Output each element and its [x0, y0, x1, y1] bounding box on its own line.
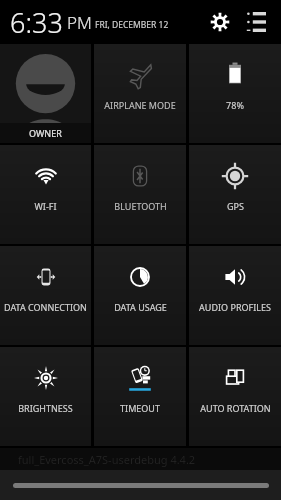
button[interactable]: WI-FI [0, 145, 91, 244]
button[interactable]: Settings [205, 7, 235, 37]
staticText: OWNER [29, 127, 62, 139]
staticText: PM [67, 11, 92, 34]
button[interactable]: DATA USAGE [94, 246, 186, 345]
staticText: 78% [226, 99, 244, 111]
button[interactable]: DATA CONNECTION [0, 246, 91, 345]
staticText: BRIGHTNESS [18, 402, 73, 414]
staticText: GPS [227, 200, 244, 212]
staticText: DATA USAGE [114, 301, 167, 313]
staticText: WI-FI [34, 200, 57, 212]
button[interactable]: AUDIO PROFILES [189, 246, 281, 345]
button[interactable]: AIRPLANE MODE [94, 44, 186, 143]
button[interactable]: TIMEOUT [94, 347, 186, 446]
staticText: full_Evercoss_A7S-userdebug 4.4.2 [18, 452, 196, 467]
button[interactable]: AUTO ROTATION [189, 347, 281, 446]
staticText: FRI, DECEMBER 12 [95, 19, 169, 31]
staticText: AIRPLANE MODE [104, 99, 176, 111]
button[interactable]: 78% [189, 44, 281, 143]
staticText: 6:33 [10, 4, 63, 41]
button[interactable]: GPS [189, 145, 281, 244]
staticText: TIMEOUT [120, 402, 160, 414]
button[interactable]: BRIGHTNESS [0, 347, 91, 446]
staticText: DATA CONNECTION [4, 301, 87, 313]
button[interactable]: Drag handle [13, 483, 269, 488]
button[interactable]: Notifications list [241, 7, 271, 37]
staticText: BLUETOOTH [114, 200, 167, 212]
staticText: AUDIO PROFILES [199, 301, 271, 313]
staticText: AUTO ROTATION [200, 402, 271, 414]
button[interactable]: BLUETOOTH [94, 145, 186, 244]
button[interactable]: OWNER [0, 44, 91, 143]
